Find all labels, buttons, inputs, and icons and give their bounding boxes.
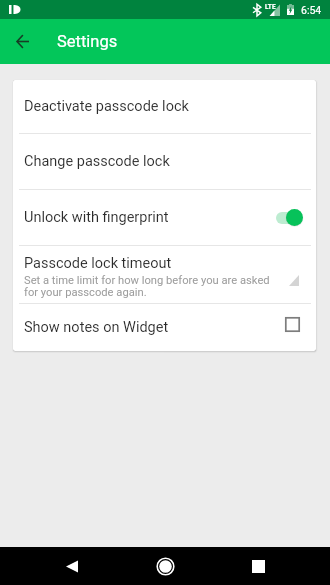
staticText: Passcode lock timeout — [24, 255, 172, 272]
button[interactable]: Show notes on Widget — [13, 304, 316, 351]
button[interactable]: Home — [148, 549, 182, 583]
button[interactable]: Back — [55, 549, 89, 583]
staticText: Change passcode lock — [24, 153, 170, 170]
button[interactable]: Recent apps — [241, 549, 275, 583]
button[interactable]: Deactivate passcode lock — [13, 80, 316, 133]
button[interactable]: Change passcode lock — [13, 134, 316, 189]
staticText: Deactivate passcode lock — [24, 98, 189, 115]
staticText: LTE — [265, 3, 276, 11]
staticText: 6:54 — [301, 4, 322, 16]
staticText: Set a time limit for how long before you… — [24, 274, 272, 299]
staticText: Unlock with fingerprint — [24, 209, 169, 226]
staticText: Settings — [57, 32, 118, 51]
button[interactable]: Unlock with fingerprint — [13, 190, 316, 245]
button[interactable]: Passcode lock timeout — [13, 246, 316, 303]
staticText: Show notes on Widget — [24, 319, 169, 336]
button[interactable]: Navigate up — [6, 25, 39, 58]
